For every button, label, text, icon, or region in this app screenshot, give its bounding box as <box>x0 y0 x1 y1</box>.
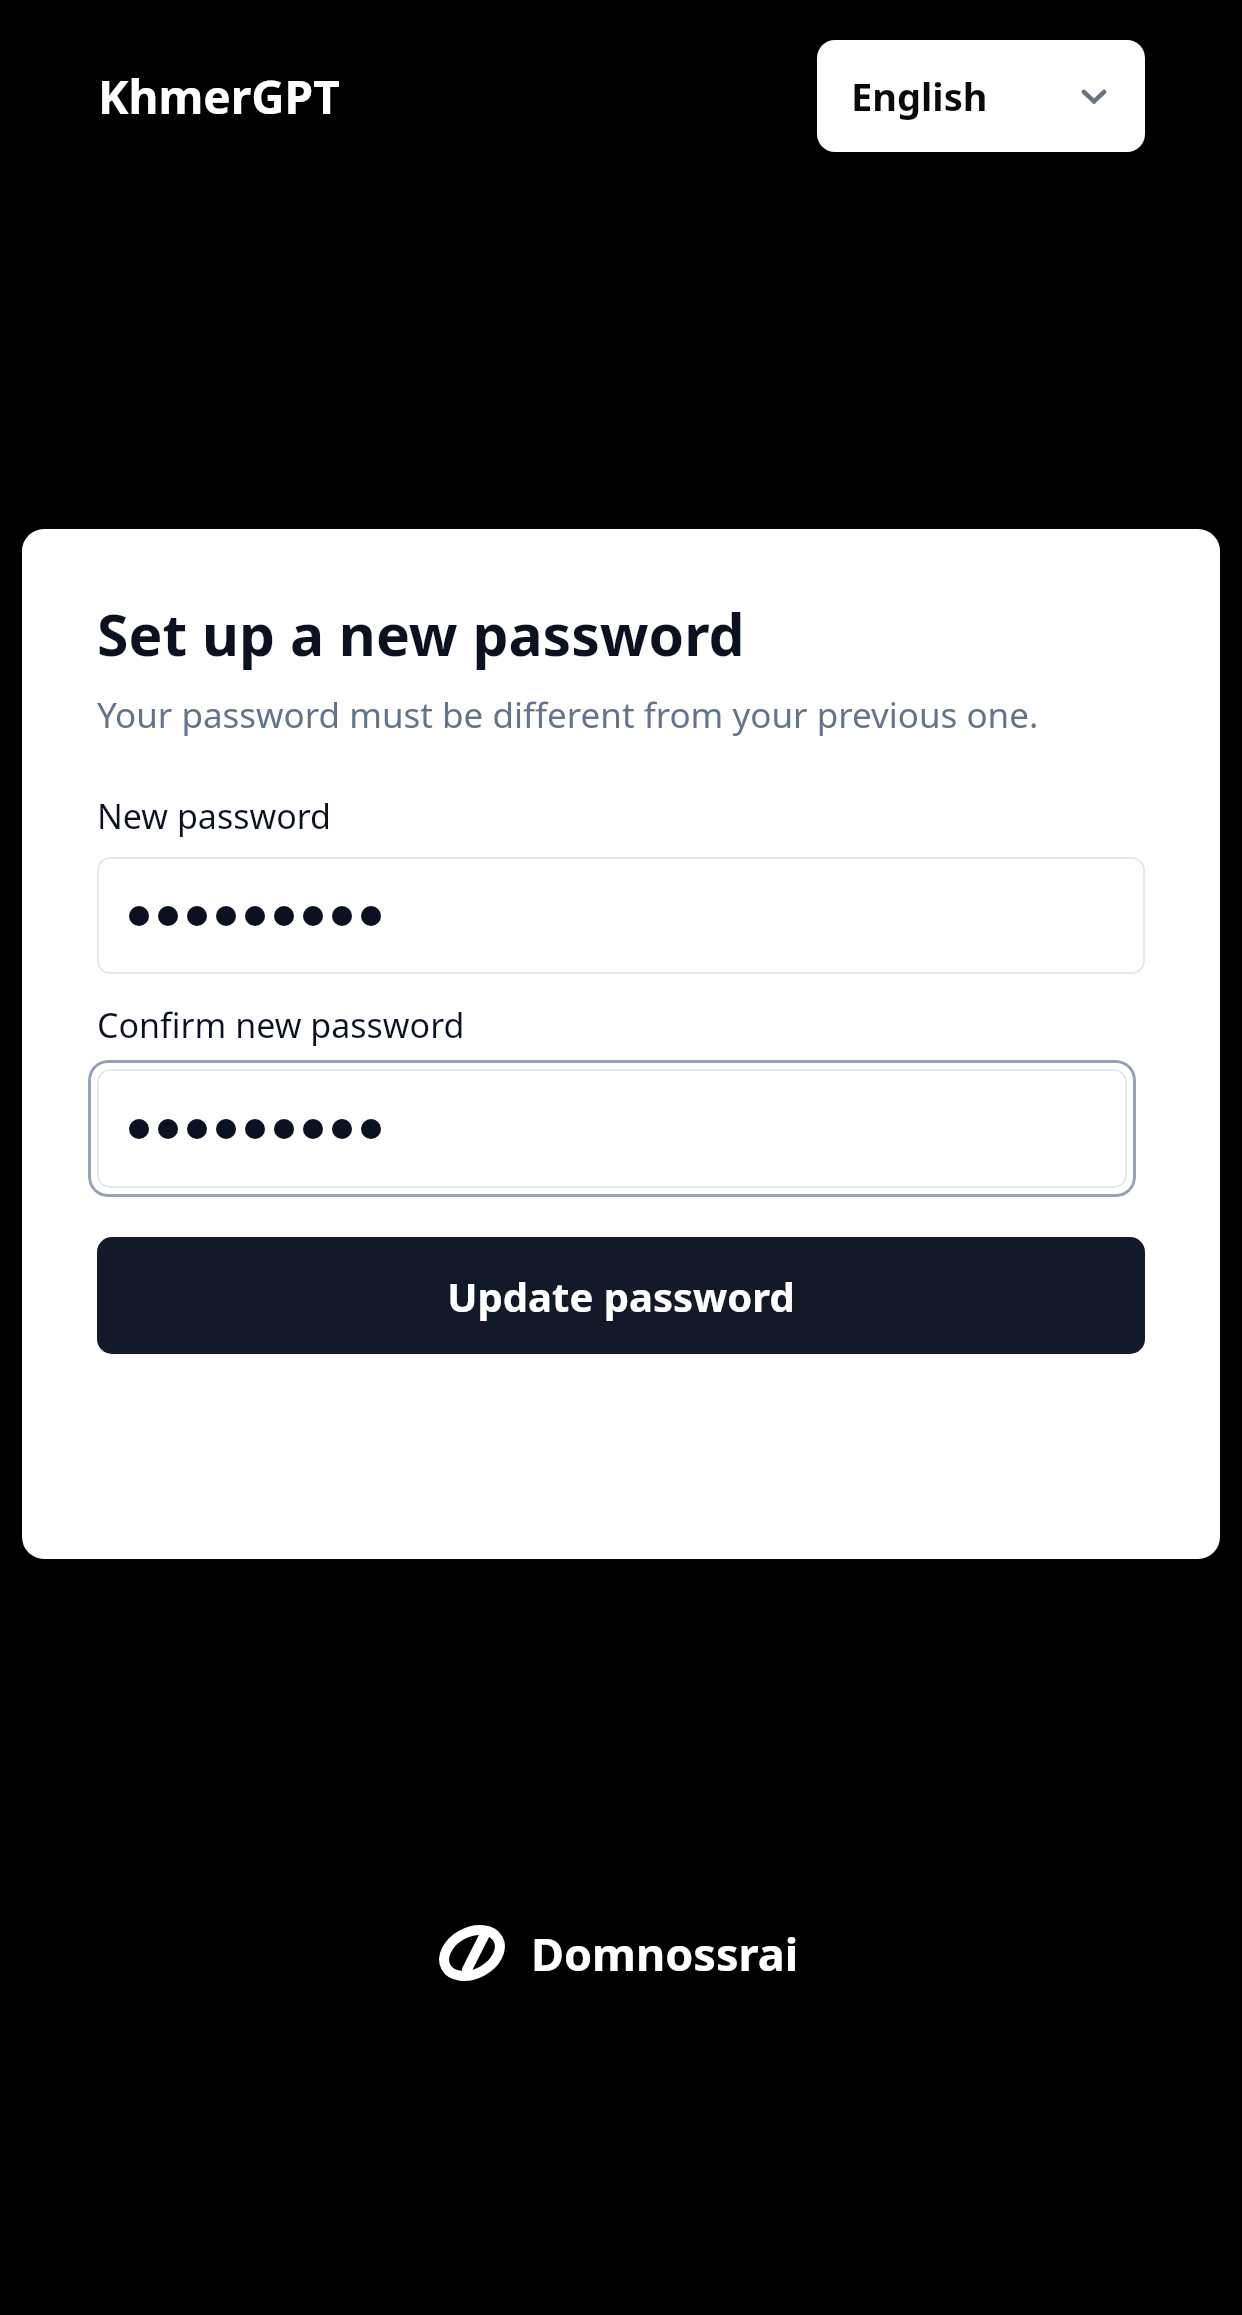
staticText: Your password must be different from you… <box>97 691 1039 739</box>
staticText: Domnossrai <box>531 1923 799 1984</box>
button[interactable] <box>97 857 1145 974</box>
staticText: KhmerGPT <box>98 65 340 128</box>
staticText: English <box>851 70 988 122</box>
staticText: Update password <box>447 1269 795 1323</box>
button[interactable]: English <box>817 40 1145 152</box>
staticText: New password <box>97 793 332 839</box>
button[interactable]: Update password <box>97 1237 1145 1354</box>
button[interactable] <box>88 1060 1136 1197</box>
staticText: Confirm new password <box>97 1002 465 1048</box>
other: Domnossrai logo <box>435 1916 509 1990</box>
staticText: Set up a new password <box>97 595 745 673</box>
